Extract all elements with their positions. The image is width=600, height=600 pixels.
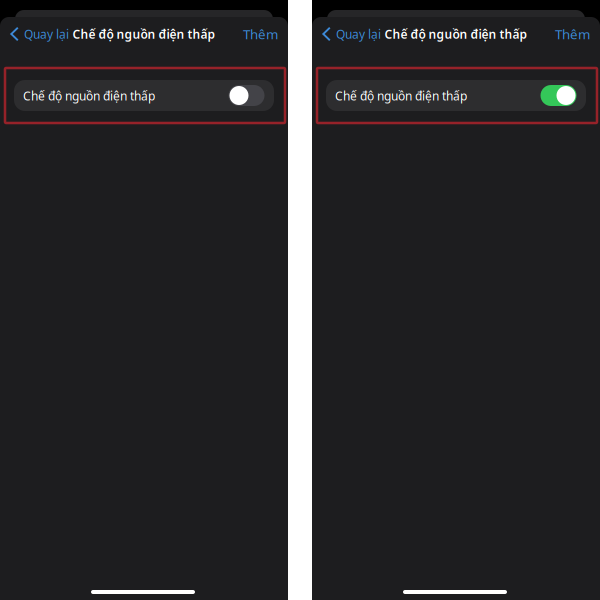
staticText: Chế độ nguồn điện thấp bbox=[335, 88, 467, 104]
button[interactable]: Chế độ nguồn điện thấp bbox=[14, 80, 274, 111]
button[interactable]: Quay lại bbox=[9, 24, 70, 44]
button[interactable]: Thêm bbox=[553, 24, 592, 44]
staticText: Thêm bbox=[243, 25, 278, 43]
staticText: Quay lại bbox=[24, 26, 69, 42]
staticText: Chế độ nguồn điện thấp bbox=[72, 26, 215, 42]
staticText: Chế độ nguồn điện thấp bbox=[384, 26, 527, 42]
staticText: Quay lại bbox=[336, 26, 381, 42]
button[interactable]: Chế độ nguồn điện thấp bbox=[540, 85, 576, 106]
staticText: Thêm bbox=[555, 25, 590, 43]
staticText: Chế độ nguồn điện thấp bbox=[23, 88, 155, 104]
button[interactable]: Quay lại bbox=[321, 24, 382, 44]
button[interactable]: Chế độ nguồn điện thấp bbox=[326, 80, 586, 111]
button[interactable]: Chế độ nguồn điện thấp bbox=[228, 85, 264, 106]
button[interactable]: Thêm bbox=[241, 24, 280, 44]
